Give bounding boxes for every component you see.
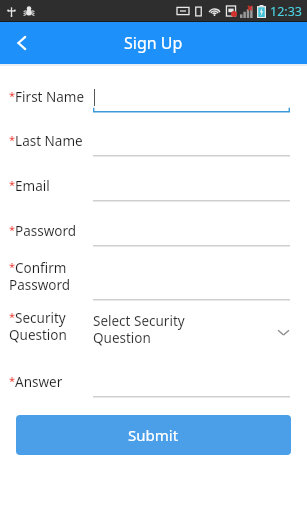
- button[interactable]: *Answer: [0, 353, 307, 398]
- button[interactable]: *First Name: [0, 66, 307, 113]
- staticText: 12:33: [270, 3, 302, 20]
- button[interactable]: *Email: [0, 157, 307, 202]
- staticText: *Email: [9, 177, 50, 195]
- staticText: Submit: [128, 425, 179, 445]
- staticText: *Confirm Password: [9, 259, 71, 294]
- staticText: *First Name: [9, 88, 85, 106]
- button[interactable]: *Confirm Password: [0, 247, 307, 301]
- button[interactable]: Submit: [16, 415, 291, 455]
- button[interactable]: Back: [0, 22, 44, 64]
- staticText: Sign Up: [124, 32, 183, 54]
- staticText: *Last Name: [9, 132, 83, 150]
- button[interactable]: *Last Name: [0, 113, 307, 157]
- staticText: Select Security Question: [93, 312, 185, 347]
- staticText: *Password: [9, 222, 77, 240]
- button[interactable]: *Security Question: [0, 301, 307, 353]
- staticText: *Security Question: [9, 309, 67, 344]
- button[interactable]: *Password: [0, 202, 307, 247]
- staticText: *Answer: [9, 373, 63, 391]
- other: Open security question list: [277, 326, 290, 339]
